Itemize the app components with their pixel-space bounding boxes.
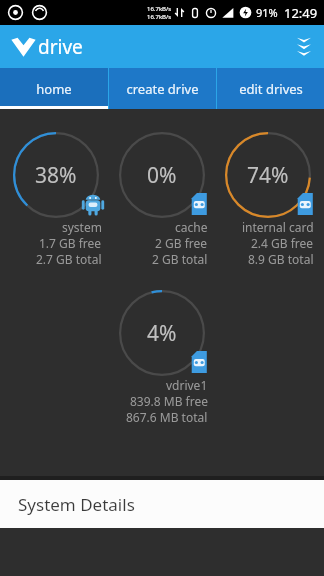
- button[interactable]: 4%: [112, 289, 212, 425]
- button[interactable]: edit drives: [217, 68, 324, 109]
- staticText: create drive: [126, 80, 199, 98]
- staticText: 867.6 MB total: [126, 409, 208, 425]
- staticText: 0%: [147, 161, 177, 190]
- staticText: home: [36, 80, 72, 98]
- button[interactable]: Expand all: [284, 27, 324, 67]
- staticText: 74%: [247, 161, 289, 190]
- staticText: cache: [175, 219, 208, 235]
- staticText: 8.9 GB total: [248, 251, 314, 267]
- staticText: internal card: [242, 219, 314, 235]
- staticText: 2.4 GB free: [251, 235, 314, 251]
- staticText: drive: [38, 34, 83, 60]
- staticText: 12:49: [284, 4, 318, 22]
- button[interactable]: 74%: [218, 131, 318, 267]
- staticText: System Details: [18, 493, 135, 516]
- staticText: system: [62, 219, 102, 235]
- button[interactable]: System Details: [0, 480, 324, 528]
- staticText: 16.7kB/s: [147, 13, 172, 21]
- staticText: 1.7 GB free: [39, 235, 102, 251]
- staticText: edit drives: [239, 80, 303, 98]
- staticText: 4%: [147, 319, 177, 348]
- staticText: 16.7kB/s: [147, 5, 172, 13]
- button[interactable]: home: [0, 68, 108, 109]
- staticText: vdrive1: [166, 377, 208, 393]
- staticText: 38%: [35, 161, 77, 190]
- button[interactable]: 38%: [6, 131, 106, 267]
- staticText: 91%: [256, 5, 278, 20]
- staticText: 839.8 MB free: [130, 393, 208, 409]
- staticText: 2 GB free: [155, 235, 208, 251]
- staticText: 2.7 GB total: [36, 251, 102, 267]
- button[interactable]: create drive: [109, 68, 216, 109]
- button[interactable]: 0%: [112, 131, 212, 267]
- staticText: 2 GB total: [152, 251, 208, 267]
